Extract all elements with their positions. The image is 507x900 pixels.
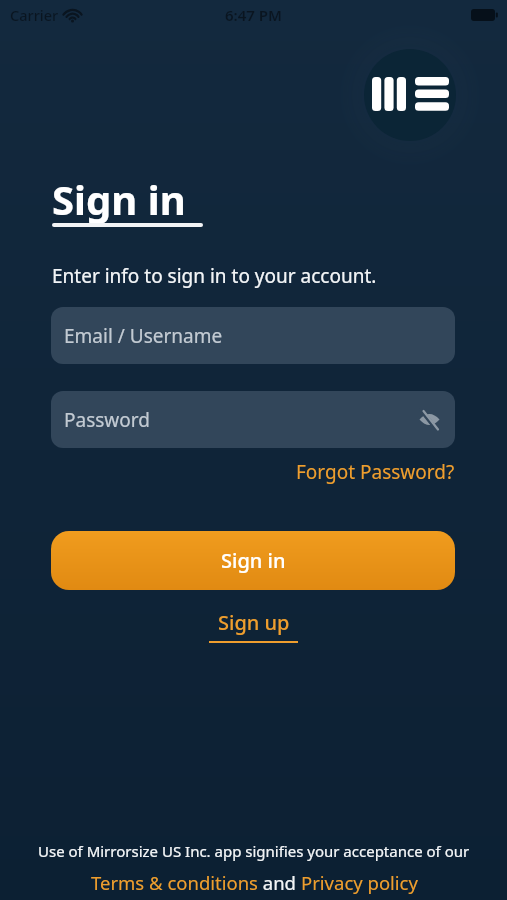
staticText: Password bbox=[64, 407, 150, 433]
staticText: Sign in bbox=[52, 172, 186, 226]
button[interactable]: Email / Username bbox=[51, 307, 455, 364]
staticText: Email / Username bbox=[64, 323, 223, 349]
staticText: Carrier bbox=[10, 5, 59, 25]
staticText: Sign in bbox=[221, 547, 286, 574]
staticText: and bbox=[258, 870, 301, 895]
button[interactable] bbox=[419, 411, 440, 428]
staticText: 6:47 PM bbox=[225, 5, 282, 25]
button[interactable]: Forgot Password? bbox=[296, 459, 455, 485]
staticText: Use of Mirrorsize US Inc. app signifies … bbox=[38, 841, 470, 861]
button[interactable]: Sign up bbox=[209, 609, 298, 643]
button[interactable]: Password bbox=[51, 391, 455, 448]
button[interactable]: Privacy policy bbox=[301, 870, 418, 895]
button[interactable]: Terms & conditions bbox=[91, 870, 258, 895]
staticText: Sign up bbox=[218, 609, 290, 636]
staticText: Enter info to sign in to your account. bbox=[52, 263, 377, 289]
button[interactable]: Sign in bbox=[51, 531, 455, 590]
